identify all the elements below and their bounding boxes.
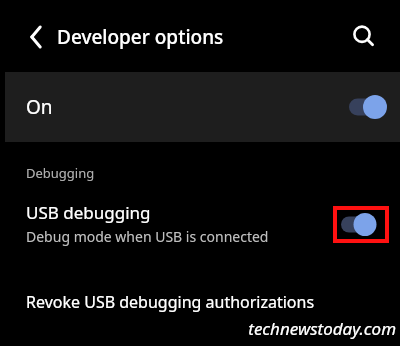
button[interactable]: USB debugging toggle — [341, 212, 383, 237]
button[interactable]: On — [5, 72, 400, 142]
staticText: Revoke USB debugging authorizations — [26, 291, 315, 313]
button[interactable]: USB debugging — [0, 196, 400, 256]
staticText: Debug mode when USB is connected — [26, 227, 269, 246]
button[interactable]: Back — [14, 15, 58, 59]
staticText: technewstoday.com — [248, 317, 396, 340]
staticText: On — [26, 94, 53, 120]
button[interactable]: Revoke USB debugging authorizations — [0, 284, 400, 320]
staticText: USB debugging — [26, 201, 151, 224]
button[interactable]: Search — [340, 14, 384, 58]
staticText: Debugging — [26, 164, 95, 182]
staticText: Developer options — [57, 24, 224, 50]
